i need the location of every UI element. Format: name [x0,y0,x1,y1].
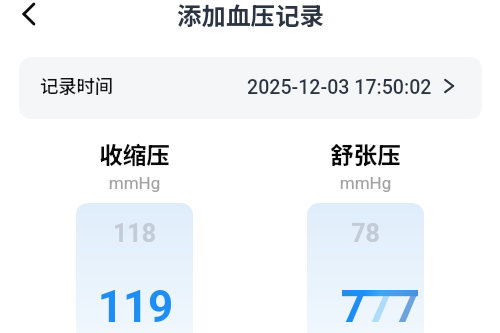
staticText: 添加血压记录 [177,0,324,32]
button[interactable]: 78 [307,203,424,333]
staticText: 119 [77,281,193,333]
staticText: mmHg [307,173,424,193]
staticText: 记录时间 [40,72,114,98]
button[interactable]: Back [7,0,51,36]
button[interactable]: 118 [76,203,193,333]
staticText: 7 [321,281,424,333]
staticText: mmHg [76,173,193,193]
staticText: 7 [307,281,412,333]
staticText: 收缩压 [76,137,193,171]
staticText: 舒张压 [307,137,424,171]
staticText: 78 [307,219,424,248]
staticText: 118 [76,219,193,248]
staticText: 7 [348,281,424,333]
staticText: 2025-12-03 17:50:02 [247,76,432,99]
button[interactable]: 记录时间 [19,57,482,119]
